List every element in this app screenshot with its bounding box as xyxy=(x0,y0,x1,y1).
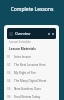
staticText: Overview xyxy=(15,31,31,36)
staticText: 04 xyxy=(7,79,11,83)
staticText: 02 xyxy=(7,63,11,67)
staticText: The Best Lessons Here xyxy=(14,63,46,67)
button[interactable]: 04 xyxy=(4,77,59,85)
button[interactable]: 06 xyxy=(4,93,59,100)
staticText: 05 xyxy=(7,87,11,91)
staticText: Final Review Today xyxy=(14,95,41,99)
staticText: 03 xyxy=(7,71,11,75)
staticText: My Right of Fire xyxy=(14,71,37,75)
staticText: Intro lesson xyxy=(14,55,31,59)
button[interactable]: 03 xyxy=(4,69,59,77)
button[interactable]: 01 xyxy=(4,53,59,61)
button[interactable]: Overview xyxy=(7,28,56,39)
staticText: 06 xyxy=(7,95,11,99)
button[interactable]: 05 xyxy=(4,85,59,93)
staticText: Lesson Schedule xyxy=(9,40,31,44)
staticText: Complete Lessons xyxy=(0,6,64,13)
staticText: 01 xyxy=(7,55,11,59)
staticText: Lesson Materials xyxy=(9,47,36,51)
staticText: New Gardens Class xyxy=(14,87,41,91)
button[interactable]: 02 xyxy=(4,61,59,69)
staticText: The Many Digital Sheet xyxy=(14,79,47,83)
